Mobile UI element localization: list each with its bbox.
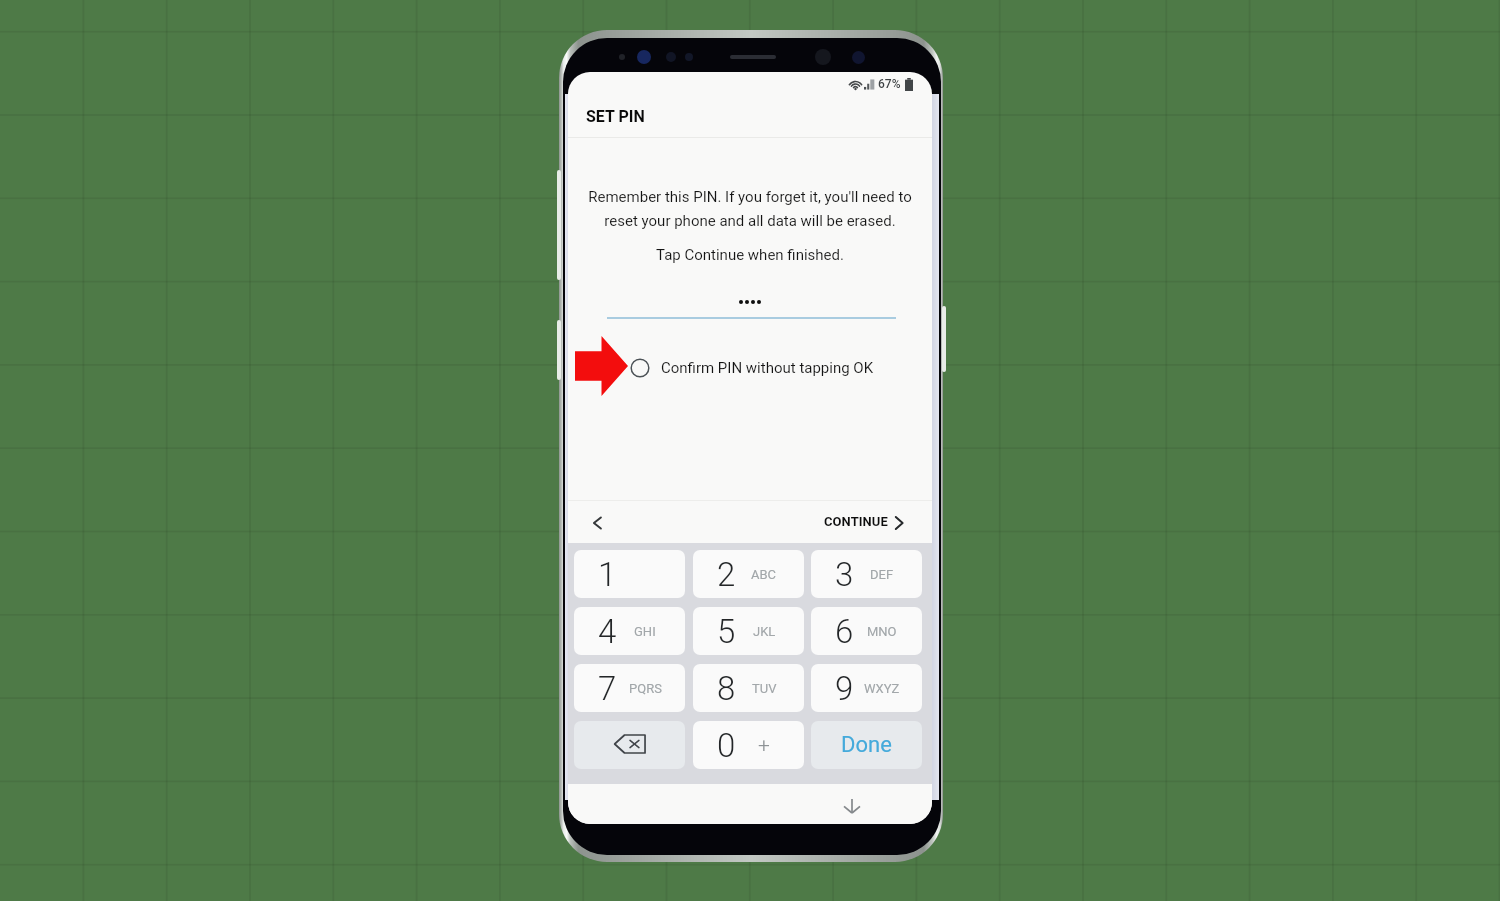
staticText: 3 (835, 555, 854, 594)
staticText: PQRS (629, 681, 662, 696)
button[interactable]: 1 (574, 550, 685, 598)
staticText: 9 (835, 669, 854, 708)
staticText: 67% (878, 77, 901, 91)
staticText: Confirm PIN without tapping OK (661, 359, 874, 377)
button[interactable]: 0 (693, 721, 804, 769)
staticText: GHI (634, 624, 656, 639)
staticText: CONTINUE (824, 514, 888, 529)
button[interactable]: 3 (811, 550, 922, 598)
button[interactable]: 7 (574, 664, 685, 712)
staticText: DEF (870, 567, 894, 582)
button[interactable]: Backspace (574, 721, 685, 769)
staticText: MNO (867, 624, 897, 639)
staticText: 2 (717, 555, 736, 594)
button[interactable]: Confirm PIN without tapping OK (630, 355, 874, 380)
button[interactable]: 2 (693, 550, 804, 598)
button[interactable]: 9 (811, 664, 922, 712)
staticText: 8 (717, 669, 736, 708)
button[interactable]: 6 (811, 607, 922, 655)
button[interactable]: 5 (693, 607, 804, 655)
staticText: Remember this PIN. If you forget it, you… (568, 188, 932, 229)
button[interactable]: 4 (574, 607, 685, 655)
staticText: ABC (751, 567, 777, 582)
staticText: + (758, 733, 770, 758)
button[interactable]: Back (586, 511, 610, 535)
staticText: Done (841, 732, 892, 758)
staticText: 5 (717, 612, 736, 651)
staticText: 6 (835, 612, 854, 651)
staticText: TUV (752, 681, 777, 696)
staticText: 4 (598, 612, 617, 651)
staticText: Tap Continue when finished. (568, 246, 932, 264)
staticText: 0 (717, 726, 736, 765)
button[interactable]: 8 (693, 664, 804, 712)
staticText: JKL (753, 624, 776, 639)
button[interactable]: CONTINUE (818, 509, 914, 537)
staticText: WXYZ (864, 681, 900, 696)
staticText: 7 (598, 669, 617, 708)
staticText: 1 (598, 555, 617, 594)
staticText: SET PIN (586, 107, 645, 126)
button[interactable]: Hide keyboard (839, 796, 863, 818)
button[interactable]: Done (811, 721, 922, 769)
